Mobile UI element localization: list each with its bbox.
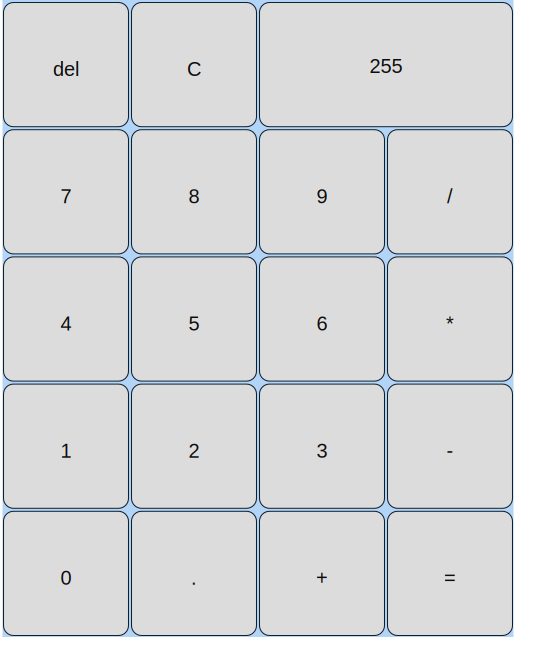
button[interactable]: 4 bbox=[3, 257, 128, 381]
staticText: + bbox=[316, 567, 328, 589]
staticText: 7 bbox=[60, 185, 71, 207]
staticText: * bbox=[446, 312, 454, 335]
staticText: 255 bbox=[369, 55, 402, 77]
staticText: 8 bbox=[188, 185, 199, 207]
button[interactable]: + bbox=[259, 511, 384, 635]
button[interactable]: 7 bbox=[3, 130, 128, 254]
button[interactable]: = bbox=[387, 511, 512, 635]
staticText: del bbox=[53, 58, 79, 80]
button[interactable]: 3 bbox=[259, 384, 384, 508]
staticText: 3 bbox=[316, 439, 327, 462]
button[interactable]: 2 bbox=[131, 384, 256, 508]
staticText: 2 bbox=[188, 439, 199, 462]
button[interactable]: * bbox=[387, 257, 512, 381]
button[interactable]: C bbox=[131, 2, 256, 127]
staticText: 4 bbox=[60, 312, 71, 335]
staticText: 9 bbox=[316, 185, 327, 207]
staticText: 6 bbox=[316, 312, 327, 335]
button[interactable]: 6 bbox=[259, 257, 384, 381]
button[interactable]: 1 bbox=[3, 384, 128, 508]
button[interactable]: / bbox=[387, 130, 512, 254]
button[interactable]: - bbox=[387, 384, 512, 508]
staticText: 0 bbox=[60, 567, 71, 589]
button[interactable]: 9 bbox=[259, 130, 384, 254]
staticText: = bbox=[444, 567, 456, 589]
staticText: / bbox=[447, 185, 453, 207]
staticText: 1 bbox=[60, 439, 71, 462]
button[interactable]: 8 bbox=[131, 130, 256, 254]
staticText: - bbox=[446, 439, 453, 462]
button[interactable]: del bbox=[3, 2, 128, 127]
button[interactable]: 0 bbox=[3, 511, 128, 635]
staticText: 5 bbox=[188, 312, 199, 335]
staticText: . bbox=[191, 567, 197, 589]
button[interactable]: . bbox=[131, 511, 256, 635]
button[interactable]: 5 bbox=[131, 257, 256, 381]
staticText: C bbox=[187, 58, 201, 80]
